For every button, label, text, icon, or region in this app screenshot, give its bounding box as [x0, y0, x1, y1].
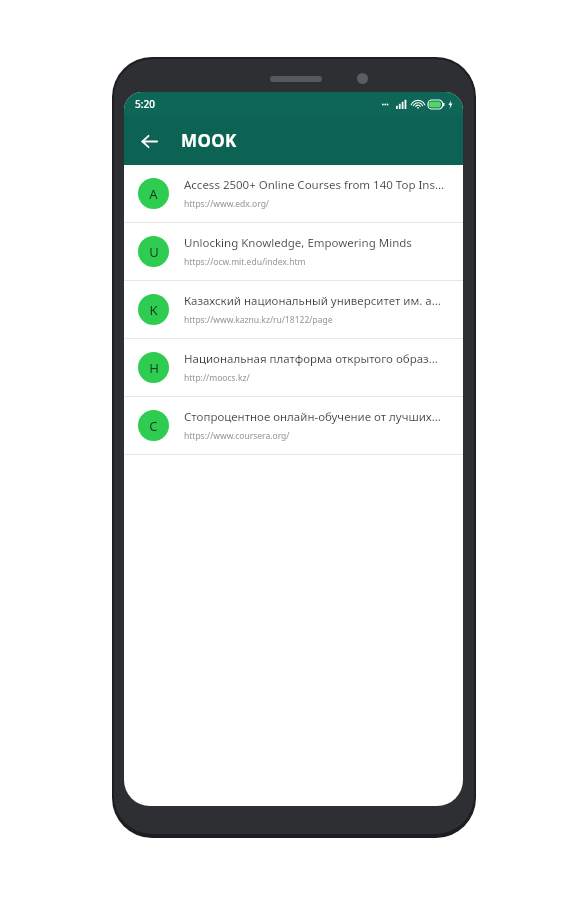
staticText: Национальная платформа открытого образ…: [184, 351, 438, 367]
staticText: U: [149, 243, 159, 261]
button[interactable]: U: [124, 223, 463, 281]
staticText: https://www.kaznu.kz/ru/18122/page: [184, 314, 333, 326]
staticText: Access 2500+ Online Courses from 140 Top…: [184, 177, 445, 193]
staticText: С: [149, 417, 158, 435]
button[interactable]: K: [124, 281, 463, 339]
staticText: A: [149, 185, 158, 203]
staticText: Стопроцентное онлайн-обучение от лучших…: [184, 409, 441, 425]
staticText: MOOK: [181, 129, 237, 152]
staticText: K: [149, 301, 158, 319]
staticText: http://moocs.kz/: [184, 372, 250, 384]
button[interactable]: A: [124, 165, 463, 223]
staticText: https://ocw.mit.edu/index.htm: [184, 256, 306, 268]
staticText: Казахский национальный университет им. а…: [184, 293, 441, 309]
staticText: https://www.coursera.org/: [184, 430, 290, 442]
button[interactable]: Н: [124, 339, 463, 397]
button[interactable]: Back: [130, 122, 168, 160]
staticText: https://www.edx.org/: [184, 198, 270, 210]
staticText: Unlocking Knowledge, Empowering Minds: [184, 235, 412, 251]
staticText: 5:20: [135, 97, 155, 111]
button[interactable]: С: [124, 397, 463, 455]
staticText: Н: [149, 359, 159, 377]
